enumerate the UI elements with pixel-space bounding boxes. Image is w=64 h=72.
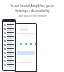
button[interactable] [3,39,15,43]
button[interactable] [3,59,15,63]
button[interactable] [3,31,15,35]
staticText: To set Sound Amplifier, go to [10,4,54,8]
button[interactable] [3,23,15,27]
button[interactable] [3,27,15,31]
staticText: and turn on the service [18,14,47,18]
staticText: Settings > Accessibility [15,9,50,13]
button[interactable] [3,51,15,55]
button[interactable] [3,55,15,59]
button[interactable] [3,43,15,47]
button[interactable] [3,47,15,51]
button[interactable] [3,35,15,39]
button[interactable] [3,63,15,67]
